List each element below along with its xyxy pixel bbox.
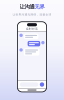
staticText: 让世界沟通无障碍，连接全球 (12, 13, 51, 16)
staticText: 无界 (34, 3, 44, 10)
staticText: 让沟通 (19, 3, 34, 10)
staticText: 实时对话 (26, 27, 38, 30)
